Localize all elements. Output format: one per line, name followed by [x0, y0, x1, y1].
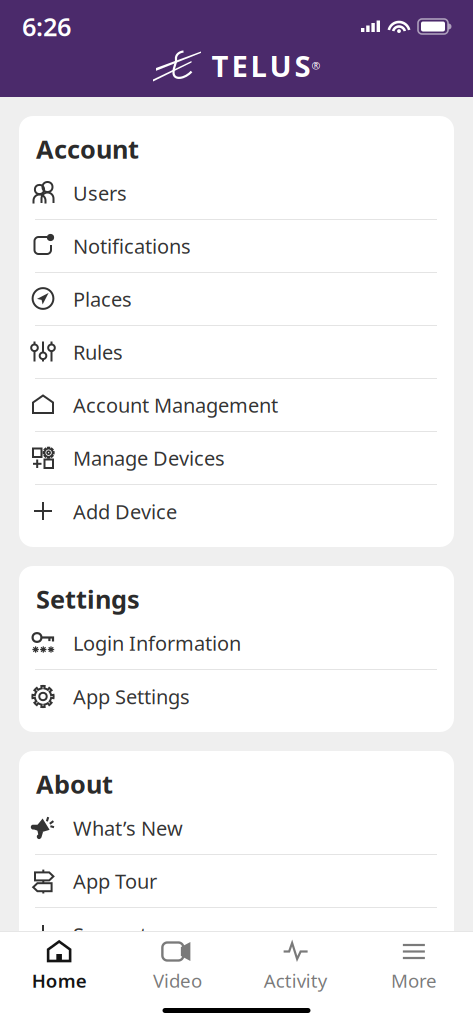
button[interactable]: App Settings	[19, 670, 454, 723]
button[interactable]: Rules	[19, 326, 454, 379]
staticText: L	[250, 46, 266, 85]
staticText: Account	[36, 132, 139, 166]
staticText: Activity	[264, 968, 328, 993]
staticText: 6:26	[22, 10, 71, 43]
button[interactable]: Manage Devices	[19, 432, 454, 485]
staticText: T	[211, 46, 228, 85]
button[interactable]: What’s New	[19, 802, 454, 855]
staticText: E	[231, 46, 247, 85]
staticText: App Settings	[73, 683, 190, 710]
button[interactable]: Account Management	[19, 379, 454, 432]
staticText: Settings	[36, 582, 140, 616]
staticText: What’s New	[73, 815, 183, 841]
staticText: S	[294, 46, 310, 85]
button[interactable]: Activity	[236, 932, 355, 999]
staticText: U	[269, 46, 291, 85]
staticText: Add Device	[73, 498, 177, 525]
button[interactable]: Video	[118, 932, 236, 999]
staticText: App Tour	[73, 868, 157, 894]
staticText: About	[36, 767, 113, 801]
staticText: More	[391, 968, 437, 993]
staticText: Video	[153, 968, 202, 993]
staticText: Login Information	[73, 630, 241, 656]
button[interactable]: Support	[19, 908, 454, 961]
button[interactable]: Add Device	[19, 485, 454, 538]
button[interactable]: Notifications	[19, 220, 454, 273]
staticText: Home	[32, 968, 87, 993]
staticText: Users	[73, 180, 127, 206]
button[interactable]: More	[355, 932, 473, 999]
button[interactable]: App Tour	[19, 855, 454, 908]
staticText: Notifications	[73, 233, 191, 259]
button[interactable]: Places	[19, 273, 454, 326]
staticText: ®	[311, 58, 320, 73]
staticText: Rules	[73, 339, 123, 365]
staticText: Manage Devices	[73, 445, 225, 471]
button[interactable]: Home	[0, 932, 118, 999]
button[interactable]: Users	[19, 167, 454, 220]
button[interactable]: Login Information	[19, 617, 454, 670]
staticText: Account Management	[73, 392, 278, 418]
staticText: Support	[73, 921, 147, 948]
staticText: Places	[73, 286, 132, 312]
